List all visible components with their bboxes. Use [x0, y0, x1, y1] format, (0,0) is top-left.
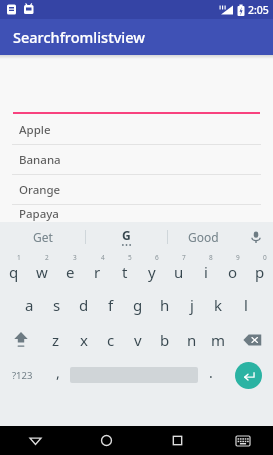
staticText: 5 [128, 253, 132, 262]
button[interactable]: 3 [56, 252, 84, 286]
staticText: 2:05 [248, 3, 269, 17]
staticText: Papaya [19, 206, 59, 222]
staticText: 1 [17, 253, 21, 262]
staticText: h [160, 295, 170, 315]
button[interactable]: Home [71, 426, 142, 455]
button[interactable] [0, 90, 273, 114]
button[interactable]: a [15, 289, 43, 321]
staticText: l [244, 295, 248, 315]
button[interactable]: Orange [0, 175, 273, 205]
button[interactable]: k [205, 289, 232, 321]
button[interactable]: d [70, 289, 97, 321]
staticText: y [148, 262, 156, 282]
staticText: n [187, 330, 197, 350]
button[interactable]: Switch keyboard [213, 426, 273, 455]
staticText: k [214, 295, 223, 315]
button[interactable]: 9 [219, 252, 246, 286]
staticText: o [228, 262, 238, 282]
button[interactable]: f [97, 289, 124, 321]
staticText: z [52, 330, 60, 350]
staticText: G [122, 227, 131, 243]
staticText: . [209, 363, 213, 382]
button[interactable]: m [205, 324, 232, 356]
button[interactable]: Voice input [238, 222, 273, 252]
staticText: q [9, 262, 19, 282]
button[interactable]: b [151, 324, 178, 356]
staticText: Good [188, 229, 219, 245]
staticText: p [255, 262, 265, 282]
staticText: 9 [236, 253, 240, 262]
button[interactable]: Recents [142, 426, 213, 455]
staticText: s [53, 295, 61, 315]
button[interactable]: x [70, 324, 97, 356]
staticText: g [133, 295, 143, 315]
staticText: Apple [19, 122, 51, 138]
button[interactable]: Banana [0, 145, 273, 175]
button[interactable]: l [232, 289, 259, 321]
button[interactable]: Searchfromlistview [0, 19, 273, 55]
staticText: d [79, 295, 89, 315]
button[interactable]: . [198, 357, 223, 393]
button[interactable]: Backspace [232, 324, 273, 356]
staticText: 4 [101, 253, 105, 262]
staticText: v [134, 330, 142, 350]
staticText: 3 [73, 253, 77, 262]
staticText: ?123 [12, 369, 33, 382]
button[interactable]: Shift [0, 324, 42, 356]
button[interactable]: Back [0, 426, 71, 455]
staticText: 8 [209, 253, 213, 262]
button[interactable]: Enter [223, 357, 273, 393]
staticText: a [25, 295, 34, 315]
staticText: m [211, 330, 226, 350]
staticText: r [94, 262, 101, 282]
button[interactable]: 7 [165, 252, 192, 286]
button[interactable]: h [151, 289, 178, 321]
staticText: Get [33, 229, 53, 245]
button[interactable]: j [178, 289, 205, 321]
staticText: 7 [182, 253, 186, 262]
staticText: j [190, 295, 194, 315]
button[interactable]: Papaya [0, 205, 273, 222]
button[interactable]: 2 [28, 252, 56, 286]
staticText: 0 [263, 253, 267, 262]
staticText: 2 [45, 253, 49, 262]
button[interactable]: 5 [111, 252, 138, 286]
staticText: Banana [19, 152, 61, 168]
staticText: u [174, 262, 184, 282]
button[interactable]: v [124, 324, 151, 356]
staticText: , [56, 363, 60, 382]
staticText: x [80, 330, 88, 350]
button[interactable]: 6 [138, 252, 165, 286]
button[interactable]: n [178, 324, 205, 356]
staticText: f [108, 295, 114, 315]
button[interactable]: z [42, 324, 70, 356]
staticText: c [107, 330, 115, 350]
button[interactable]: G [86, 222, 167, 252]
button[interactable]: Get [0, 222, 85, 252]
staticText: e [66, 262, 75, 282]
staticText: Searchfromlistview [13, 27, 145, 47]
button[interactable]: Good [168, 222, 238, 252]
button[interactable]: 0 [246, 252, 273, 286]
button[interactable]: 1 [0, 252, 28, 286]
staticText: b [160, 330, 170, 350]
button[interactable]: 8 [192, 252, 219, 286]
button[interactable]: s [43, 289, 70, 321]
staticText: 6 [155, 253, 159, 262]
staticText: i [204, 262, 208, 282]
staticText: w [36, 262, 48, 282]
staticText: t [122, 262, 128, 282]
button[interactable]: g [124, 289, 151, 321]
button[interactable]: 4 [84, 252, 111, 286]
staticText: Orange [19, 182, 61, 198]
button[interactable]: Apple [0, 115, 273, 145]
button[interactable]: , [45, 357, 70, 393]
button[interactable]: c [97, 324, 124, 356]
button[interactable]: ?123 [0, 357, 45, 393]
